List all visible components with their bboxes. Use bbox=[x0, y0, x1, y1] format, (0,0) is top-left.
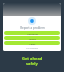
staticText: Report a problem bbox=[20, 26, 45, 30]
staticText: Get ahead bbox=[22, 56, 43, 61]
staticText: Later bbox=[29, 42, 36, 45]
staticText: Continue bbox=[27, 32, 38, 35]
staticText: Share bbox=[29, 37, 36, 40]
staticText: safely bbox=[26, 61, 38, 66]
button[interactable]: Share bbox=[4, 36, 60, 40]
staticText: No thanks bbox=[26, 46, 38, 49]
button[interactable]: Continue bbox=[4, 31, 60, 35]
button[interactable]: Later bbox=[4, 41, 60, 45]
